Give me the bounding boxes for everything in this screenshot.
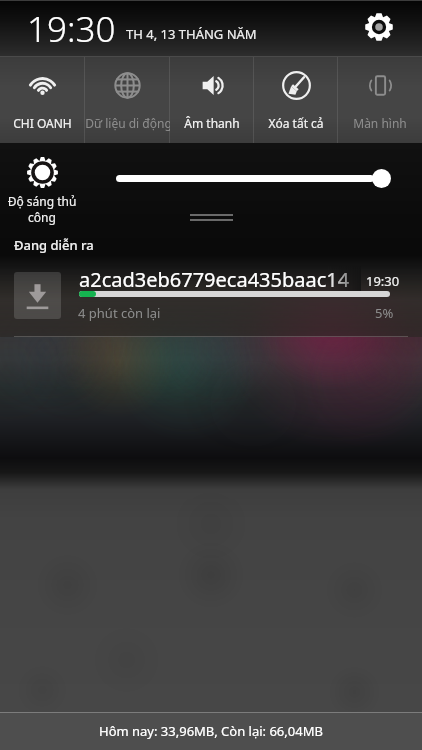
button[interactable]: Xóa tất cả — [254, 57, 338, 143]
staticText: Xóa tất cả — [268, 115, 324, 131]
staticText: Dữ liệu di động — [85, 115, 170, 131]
staticText: CHI OANH — [13, 115, 72, 131]
button[interactable]: CHI OANH — [0, 57, 85, 143]
staticText: 4 phút còn lại — [78, 304, 161, 322]
staticText: Hôm nay: 33,96MB, Còn lại: 66,04MB — [99, 722, 323, 740]
staticText: a2cad3eb6779eca435baac14 — [79, 266, 350, 292]
button[interactable]: Màn hình — [338, 57, 422, 143]
staticText: 19:30 — [366, 272, 400, 290]
staticText: Đang diễn ra — [14, 236, 94, 254]
staticText: Âm thanh — [184, 115, 240, 131]
staticText: TH 4, 13 THÁNG NĂM — [126, 25, 257, 43]
staticText: 19:30 — [27, 5, 116, 53]
staticText: Màn hình — [353, 115, 407, 131]
button[interactable]: Âm thanh — [170, 57, 254, 143]
button[interactable]: Brightness — [27, 157, 58, 188]
button[interactable]: Dữ liệu di động — [85, 57, 170, 143]
button[interactable]: Settings — [359, 7, 399, 47]
button[interactable]: a2cad3eb6779eca435baac14 — [0, 261, 422, 337]
staticText: 5% — [375, 304, 394, 322]
staticText: Độ sáng thủ công — [3, 193, 81, 225]
